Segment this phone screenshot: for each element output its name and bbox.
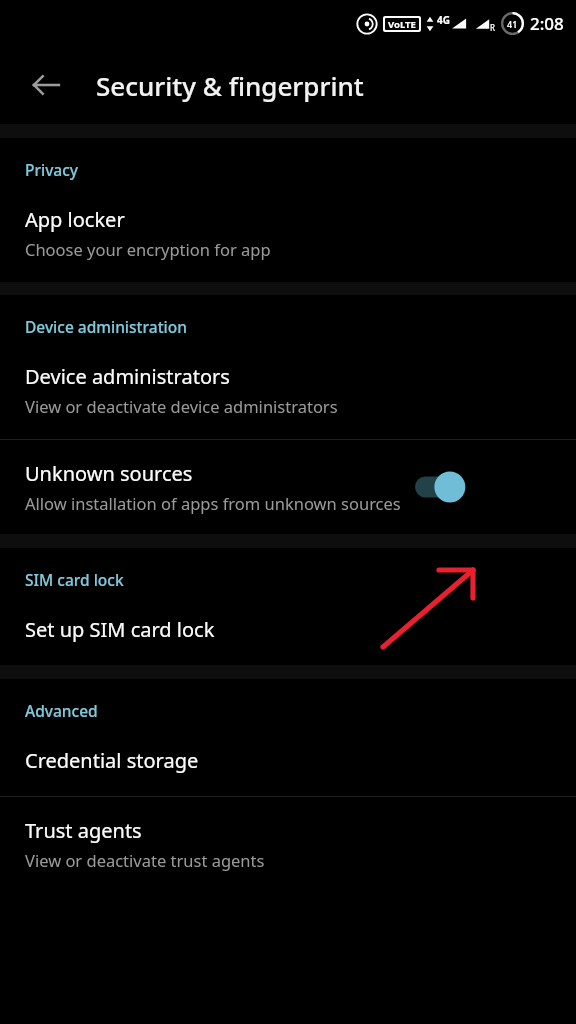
button[interactable]: Device administrators xyxy=(0,343,576,439)
button[interactable]: App locker xyxy=(0,186,576,282)
staticText: Choose your encryption for app xyxy=(25,238,271,260)
staticText: R xyxy=(490,22,495,33)
staticText: Device administration xyxy=(25,316,187,337)
staticText: 2:08 xyxy=(530,12,564,35)
button[interactable]: Trust agents xyxy=(0,797,576,893)
staticText: VoLTE xyxy=(388,18,416,30)
staticText: Security & fingerprint xyxy=(96,68,364,103)
staticText: SIM card lock xyxy=(25,569,124,590)
button[interactable]: Set up SIM card lock xyxy=(0,596,576,665)
staticText: Allow installation of apps from unknown … xyxy=(25,492,401,514)
staticText: Credential storage xyxy=(25,747,199,774)
staticText: Advanced xyxy=(25,700,98,721)
staticText: 41 xyxy=(507,18,518,30)
staticText: 4G xyxy=(437,13,450,27)
staticText: Device administrators xyxy=(25,363,230,390)
button[interactable]: Unknown sources toggle, on xyxy=(409,467,467,507)
staticText: Set up SIM card lock xyxy=(25,616,215,643)
staticText: View or deactivate trust agents xyxy=(25,849,265,871)
staticText: View or deactivate device administrators xyxy=(25,395,338,417)
staticText: App locker xyxy=(25,206,125,233)
staticText: Unknown sources xyxy=(25,460,193,487)
button[interactable]: Credential storage xyxy=(0,727,576,796)
button[interactable]: Unknown sources xyxy=(0,440,576,534)
staticText: Trust agents xyxy=(25,817,142,844)
staticText: Privacy xyxy=(25,159,79,180)
button[interactable]: Back xyxy=(18,57,74,113)
